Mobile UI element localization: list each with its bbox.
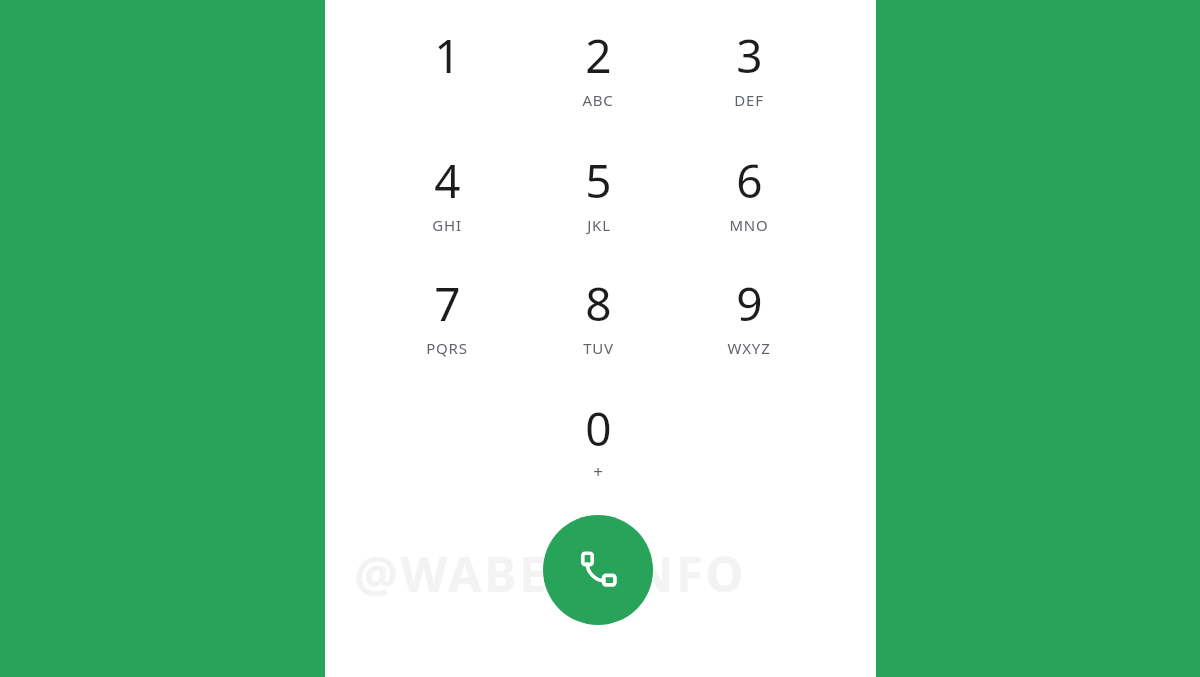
button[interactable]: 2 (533, 24, 663, 128)
button[interactable]: 4 (382, 149, 512, 253)
staticText: 6 (736, 149, 763, 212)
staticText: 2 (585, 24, 612, 87)
staticText: 8 (585, 272, 612, 335)
staticText: + (593, 460, 604, 483)
staticText: DEF (734, 90, 764, 110)
button[interactable]: 6 (684, 149, 814, 253)
staticText: GHI (432, 215, 462, 235)
staticText: PQRS (426, 338, 468, 358)
staticText: 1 (434, 24, 461, 87)
staticText: 0 (585, 397, 612, 460)
button[interactable]: 7 (382, 272, 512, 376)
button[interactable]: 3 (684, 24, 814, 128)
staticText: MNO (729, 215, 769, 235)
staticText: 5 (585, 149, 612, 212)
staticText: JKL (587, 215, 611, 235)
button[interactable]: 0 (533, 397, 663, 489)
staticText: TUV (583, 338, 614, 358)
button[interactable]: 8 (533, 272, 663, 376)
button[interactable]: Call (543, 515, 653, 625)
staticText: WXYZ (727, 338, 771, 358)
staticText: 7 (434, 272, 461, 335)
staticText: 3 (736, 24, 763, 87)
staticText: 9 (736, 272, 763, 335)
staticText: @WABETAINFO (354, 541, 747, 601)
button[interactable]: 9 (684, 272, 814, 376)
button[interactable]: 1 (382, 24, 512, 128)
button[interactable]: 5 (533, 149, 663, 253)
staticText: ABC (582, 90, 614, 110)
staticText: 4 (434, 149, 461, 212)
